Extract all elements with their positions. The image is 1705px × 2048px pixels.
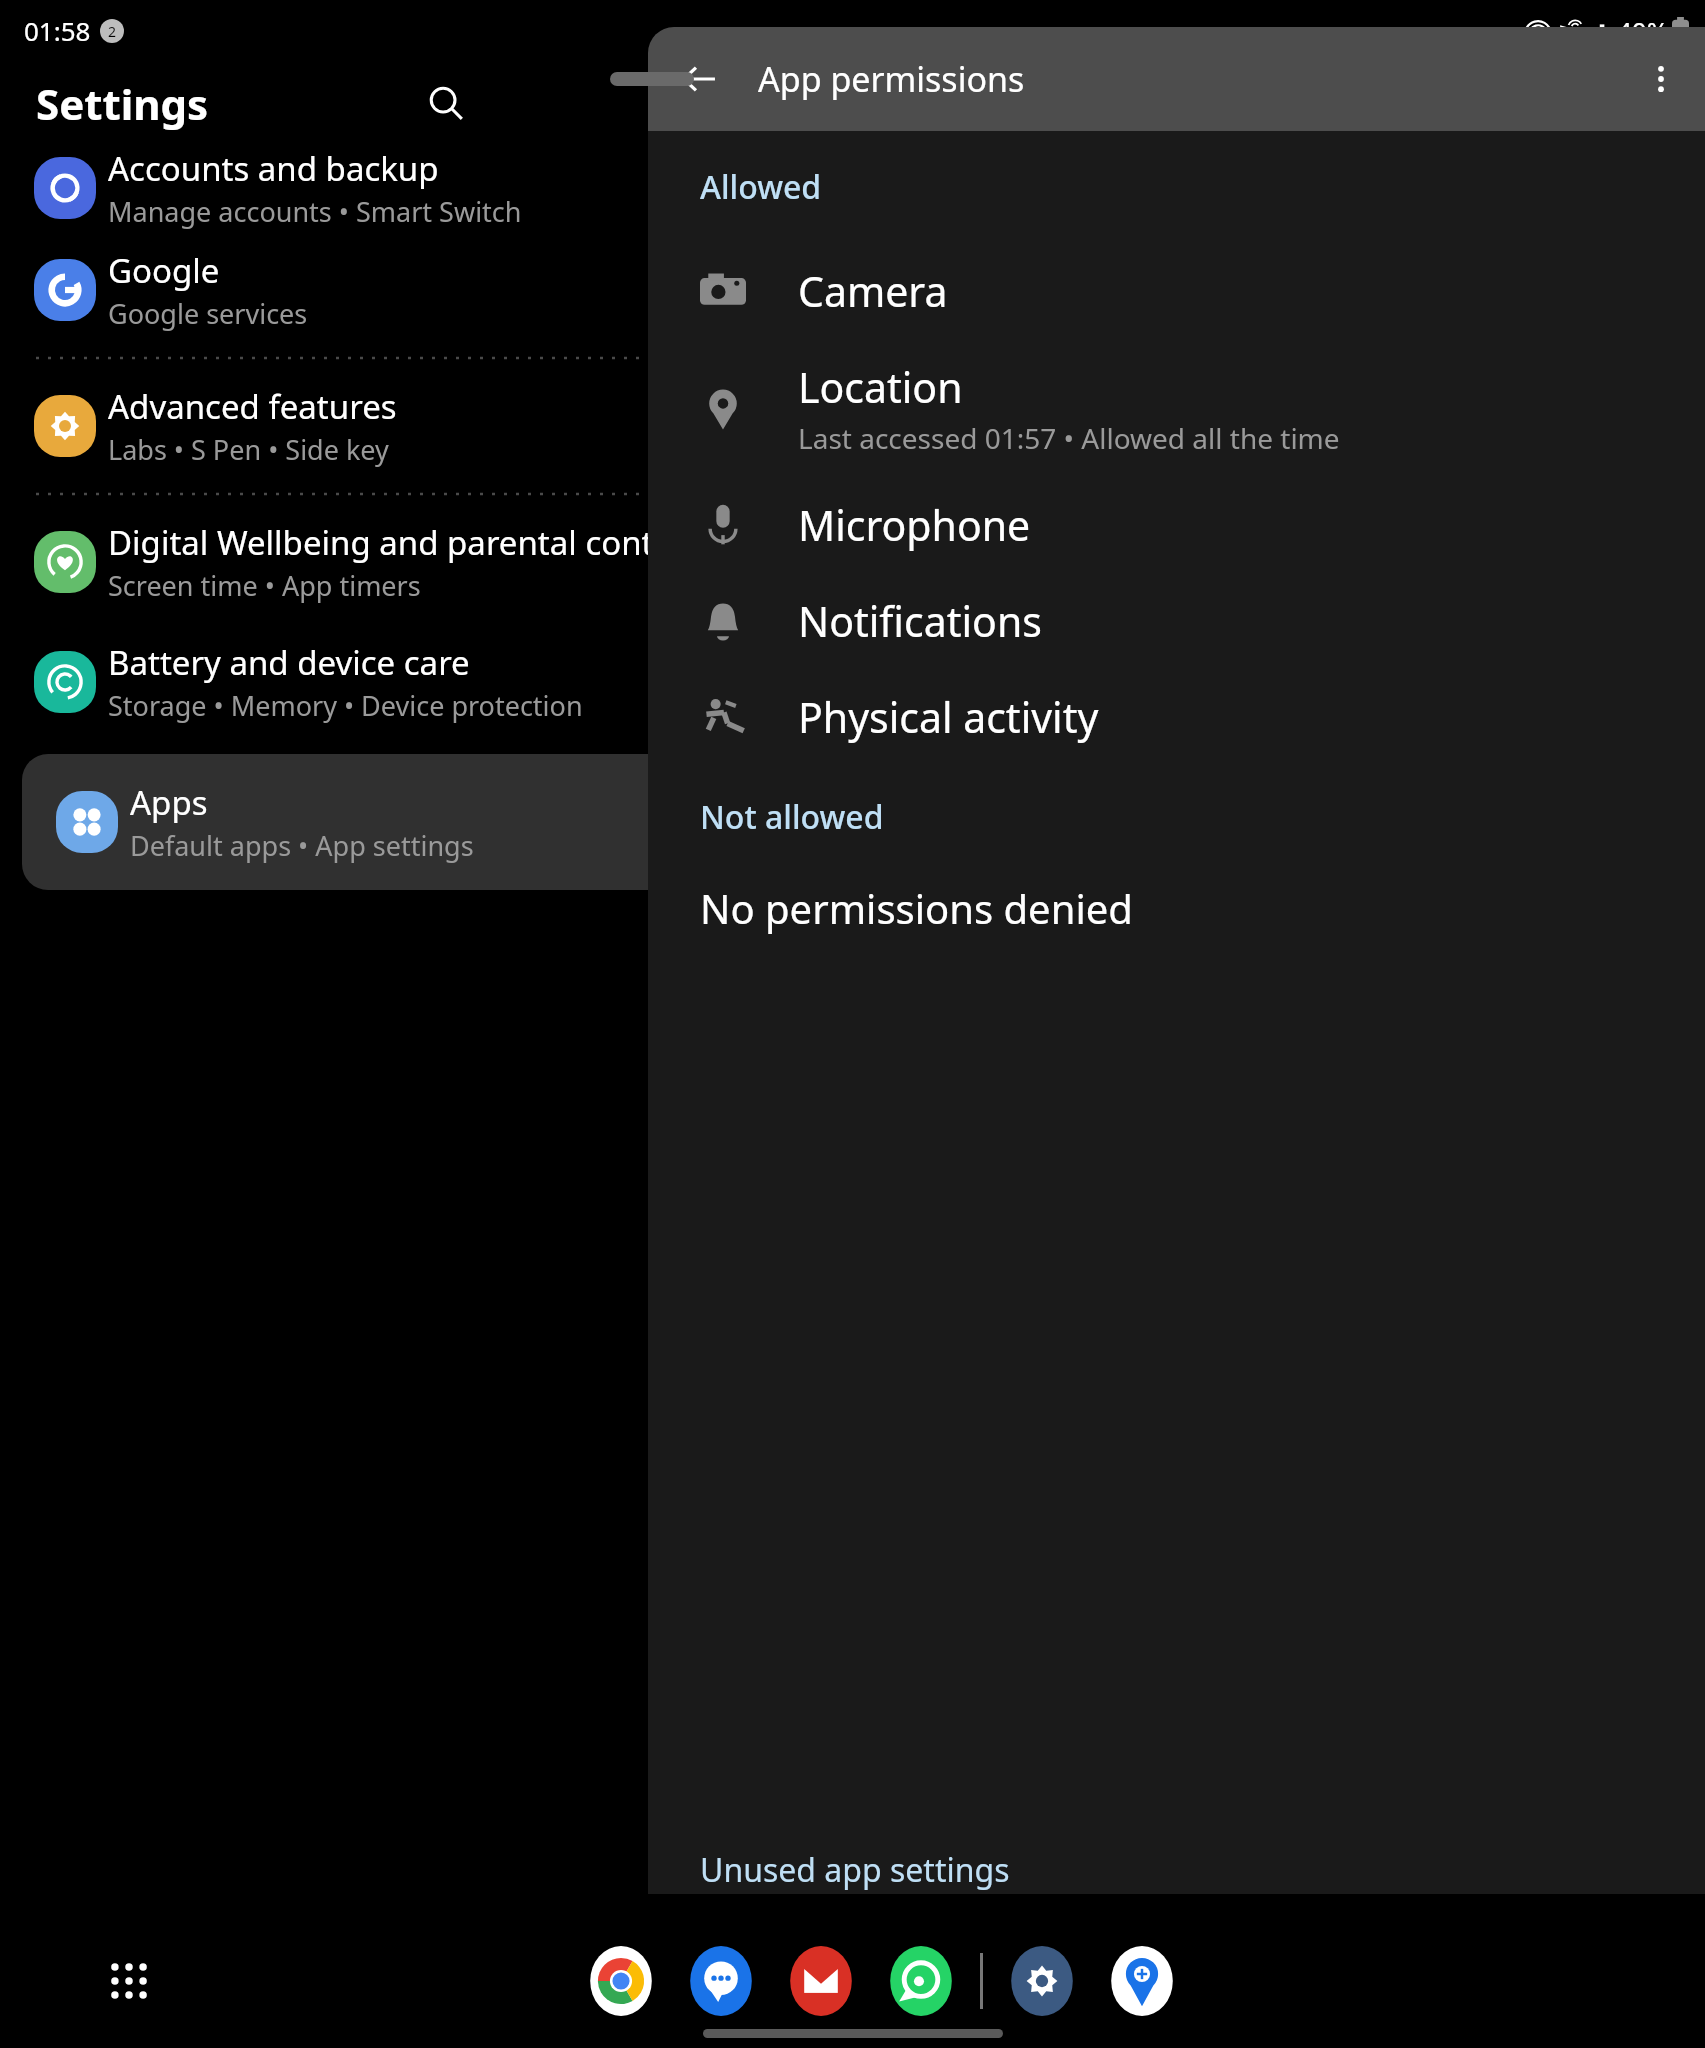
button[interactable]: WhatsApp	[884, 1944, 958, 2018]
staticText: Default apps • App settings	[130, 827, 474, 864]
button[interactable]: Search	[418, 75, 474, 131]
button[interactable]: Chrome	[584, 1944, 658, 2018]
staticText: Camera	[798, 263, 948, 319]
staticText: Microphone	[798, 497, 1031, 553]
button[interactable]: Accounts and backup	[0, 146, 853, 230]
button[interactable]: Maps	[1105, 1944, 1179, 2018]
staticText: Not allowed	[700, 795, 884, 839]
staticText: Physical activity	[798, 689, 1099, 745]
staticText: Advanced features	[108, 384, 397, 429]
staticText: Labs • S Pen • Side key	[108, 431, 389, 468]
button[interactable]: Messages	[684, 1944, 758, 2018]
staticText: 40%	[1617, 13, 1669, 48]
button[interactable]: All apps	[100, 1952, 158, 2010]
staticText: Manage accounts • Smart Switch	[108, 193, 522, 230]
button[interactable]: Camera	[648, 243, 1705, 339]
staticText: Unused app settings	[700, 1848, 1010, 1892]
staticText: Apps	[130, 780, 208, 825]
staticText: Location	[798, 359, 963, 415]
staticText: Accounts and backup	[108, 146, 439, 191]
staticText: App permissions	[758, 56, 1025, 102]
button[interactable]: Gmail	[784, 1944, 858, 2018]
button[interactable]: Google	[0, 230, 853, 350]
button[interactable]: Notifications	[648, 573, 1705, 669]
staticText: Digital Wellbeing and parental controls	[108, 520, 711, 565]
staticText: Storage • Memory • Device protection	[108, 687, 583, 724]
staticText: Battery and device care	[108, 640, 470, 685]
staticText: Allowed	[700, 165, 822, 209]
button[interactable]: Microphone	[648, 477, 1705, 573]
staticText: Notifications	[798, 593, 1042, 649]
staticText: Screen time • App timers	[108, 567, 421, 604]
button[interactable]: Location	[648, 339, 1705, 477]
button[interactable]	[610, 72, 694, 86]
staticText: Settings	[36, 75, 209, 132]
staticText: Google	[108, 248, 220, 293]
button[interactable]: Advanced features	[0, 366, 853, 486]
button[interactable]: Physical activity	[648, 669, 1705, 765]
staticText: Google services	[108, 295, 308, 332]
button[interactable]: Battery and device care	[0, 622, 853, 742]
staticText: 01:58	[24, 13, 91, 48]
button[interactable]: More options	[1631, 49, 1691, 109]
button[interactable]: Apps	[22, 754, 853, 890]
staticText: No permissions denied	[700, 881, 1133, 935]
staticText: 2	[108, 22, 117, 41]
staticText: Last accessed 01:57 • Allowed all the ti…	[798, 419, 1340, 457]
button[interactable]: Back	[668, 48, 730, 110]
button[interactable]: Digital Wellbeing and parental controls	[0, 502, 853, 622]
button[interactable]: Settings	[1005, 1944, 1079, 2018]
